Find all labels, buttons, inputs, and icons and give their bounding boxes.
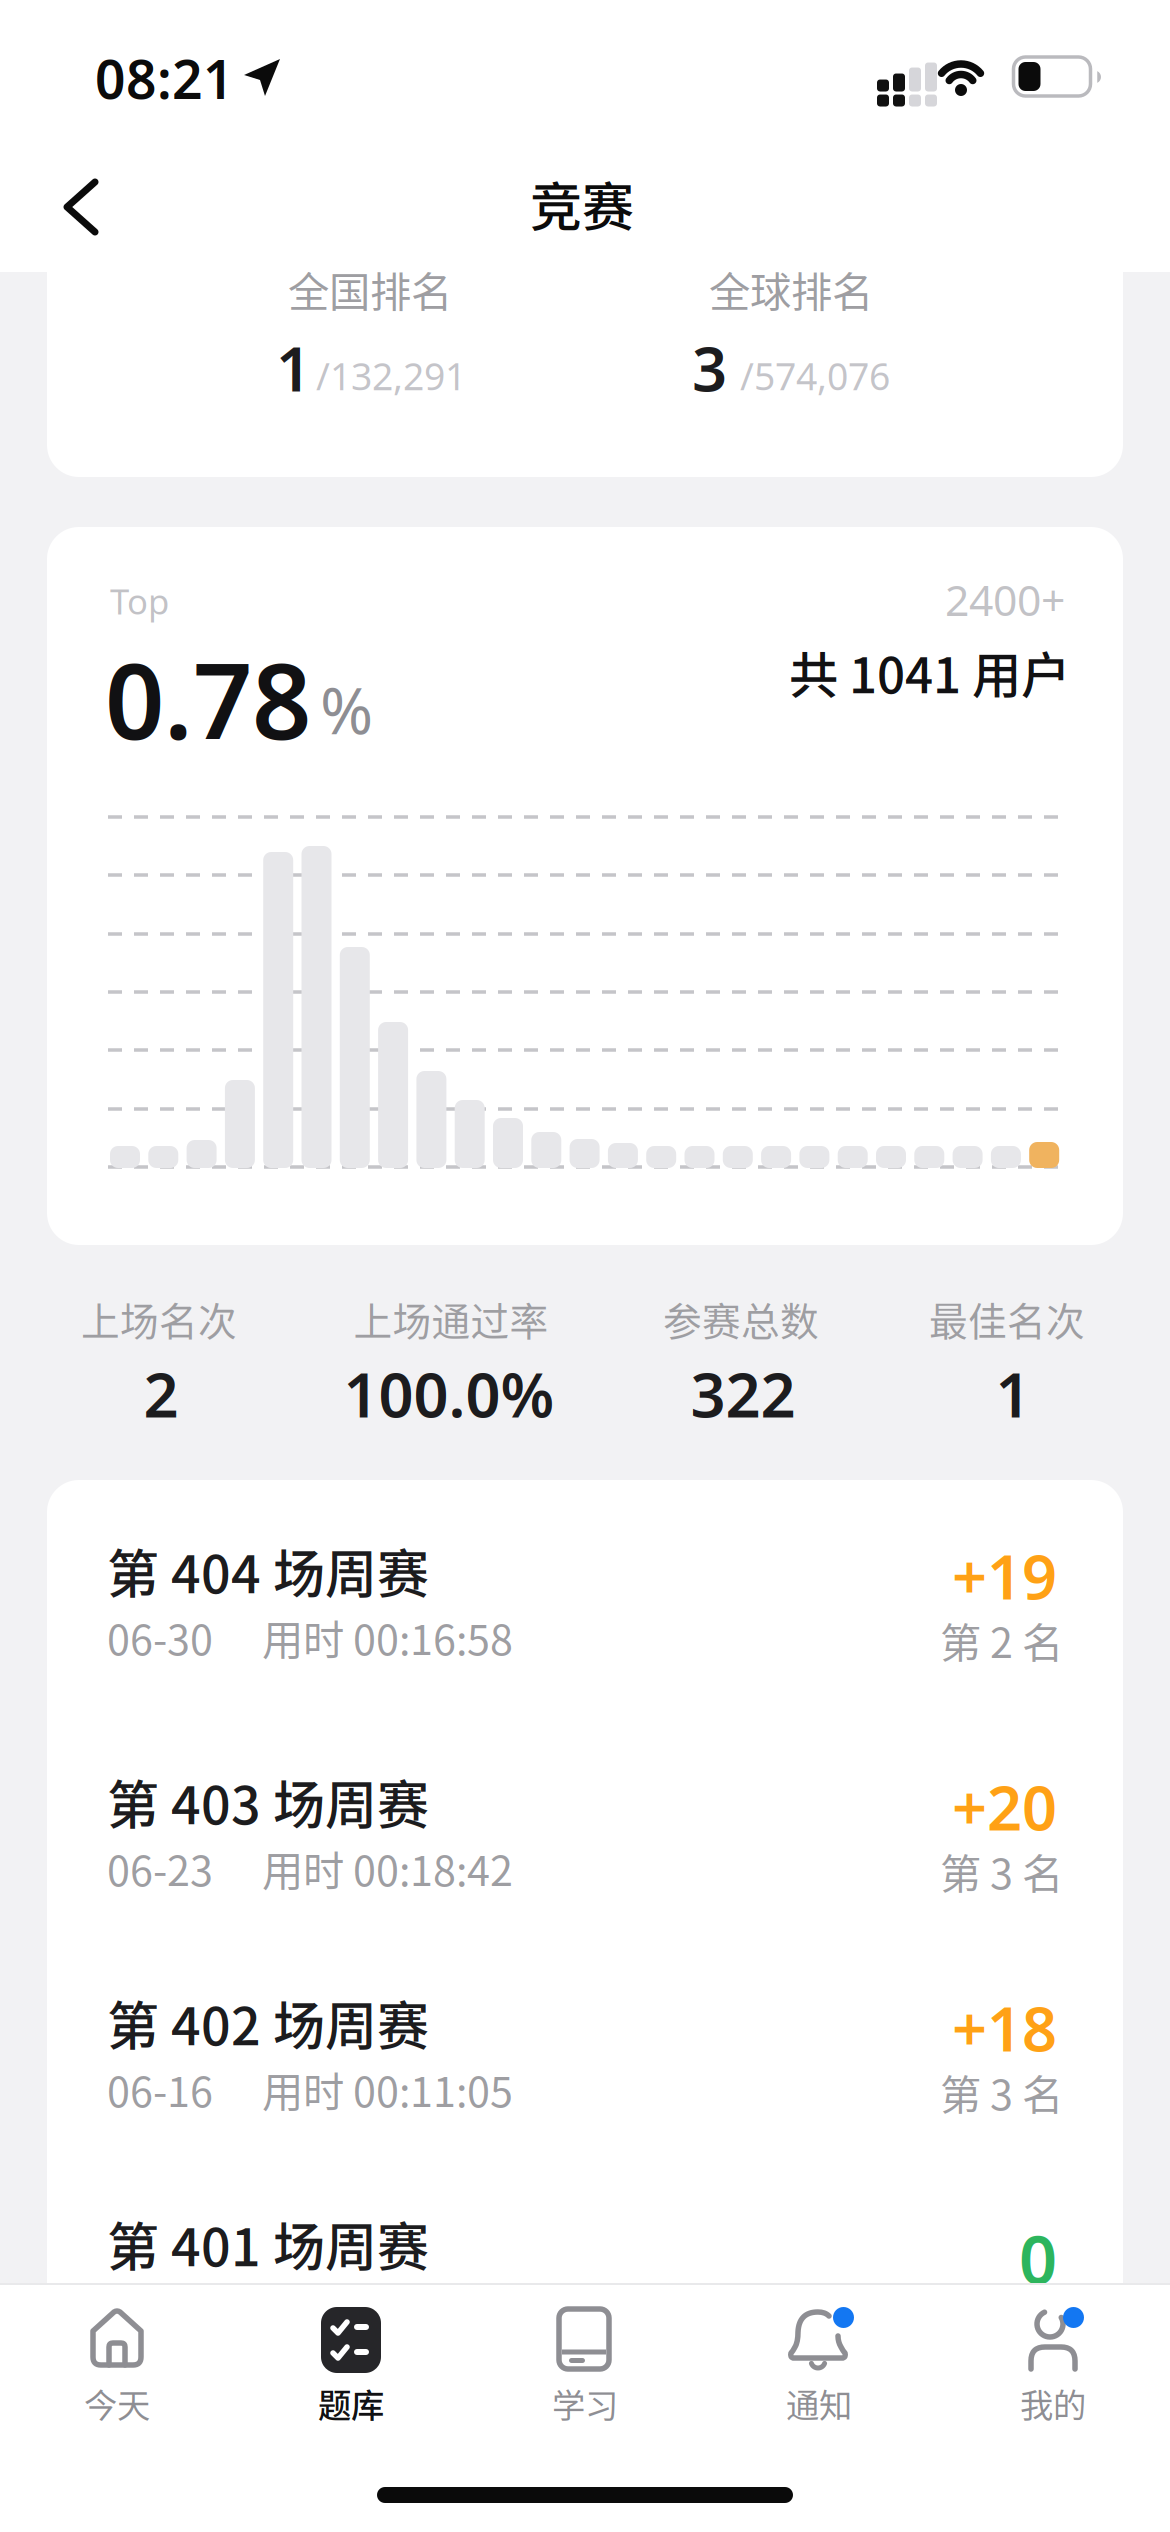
staticText: 06-23 bbox=[107, 1838, 213, 1898]
staticText: 学习 bbox=[552, 2379, 618, 2427]
staticText: 用时 00:21:11 bbox=[262, 2280, 513, 2340]
staticText: /574,076 bbox=[740, 351, 890, 401]
staticText: 2400+ bbox=[945, 571, 1065, 628]
staticText: 用时 00:16:58 bbox=[262, 1607, 513, 1667]
staticText: 用时 00:11:05 bbox=[262, 2059, 513, 2119]
staticText: 用时 00:18:42 bbox=[262, 1838, 513, 1898]
staticText: 2 bbox=[143, 1353, 178, 1434]
button[interactable]: 我的 bbox=[936, 2307, 1170, 2467]
staticText: 题库 bbox=[318, 2379, 384, 2427]
button[interactable]: 第 402 场周赛 bbox=[107, 1997, 1057, 2162]
staticText: +20 bbox=[952, 1766, 1057, 1847]
staticText: % bbox=[320, 667, 373, 752]
staticText: 全国排名 bbox=[288, 259, 452, 319]
staticText: 参赛总数 bbox=[663, 1291, 819, 1347]
staticText: 我的 bbox=[1020, 2379, 1086, 2427]
staticText: 3 bbox=[692, 327, 727, 408]
button[interactable]: 第 404 场周赛 bbox=[107, 1545, 1057, 1710]
button[interactable]: 今天 bbox=[0, 2307, 234, 2467]
staticText: 共 1041 用户 bbox=[789, 636, 1070, 707]
staticText: 第 402 场周赛 bbox=[107, 1985, 429, 2060]
staticText: 竞赛 bbox=[530, 166, 634, 241]
button[interactable]: 第 401 场周赛 bbox=[107, 2218, 1057, 2383]
staticText: 06-09 bbox=[107, 2280, 213, 2340]
staticText: 第 401 场周赛 bbox=[107, 2206, 429, 2281]
staticText: 08:21 bbox=[95, 43, 234, 114]
staticText: 第 403 场周赛 bbox=[107, 1764, 429, 1839]
staticText: +19 bbox=[952, 1535, 1057, 1616]
staticText: 通知 bbox=[786, 2379, 852, 2427]
staticText: Top bbox=[110, 578, 169, 624]
staticText: 1 bbox=[995, 1353, 1030, 1434]
staticText: 第 2 名 bbox=[940, 1610, 1063, 1670]
staticText: /132,291 bbox=[316, 351, 466, 401]
staticText: 322 bbox=[690, 1353, 795, 1434]
button[interactable]: Back bbox=[62, 178, 102, 236]
staticText: 最佳名次 bbox=[929, 1291, 1085, 1347]
staticText: 全球排名 bbox=[709, 259, 873, 319]
staticText: 06-16 bbox=[107, 2059, 213, 2119]
staticText: +18 bbox=[952, 1987, 1057, 2068]
staticText: 0 bbox=[1019, 2214, 1057, 2302]
staticText: 06-30 bbox=[107, 1607, 213, 1667]
staticText: 第 404 场周赛 bbox=[107, 1533, 429, 1608]
button[interactable]: 第 403 场周赛 bbox=[107, 1776, 1057, 1941]
staticText: 1 bbox=[276, 327, 311, 408]
staticText: 上场通过率 bbox=[353, 1291, 548, 1347]
staticText: 0.78 bbox=[105, 630, 311, 768]
staticText: 100.0% bbox=[343, 1353, 554, 1434]
button[interactable]: 学习 bbox=[468, 2307, 702, 2467]
staticText: 上场名次 bbox=[81, 1291, 237, 1347]
staticText: 第 3 名 bbox=[940, 2062, 1063, 2122]
staticText: 今天 bbox=[84, 2379, 150, 2427]
staticText: 第 3 名 bbox=[940, 1841, 1063, 1901]
button[interactable]: 题库 bbox=[234, 2307, 468, 2467]
button[interactable]: 通知 bbox=[702, 2307, 936, 2467]
staticText: 第 12 名 bbox=[917, 2283, 1063, 2343]
